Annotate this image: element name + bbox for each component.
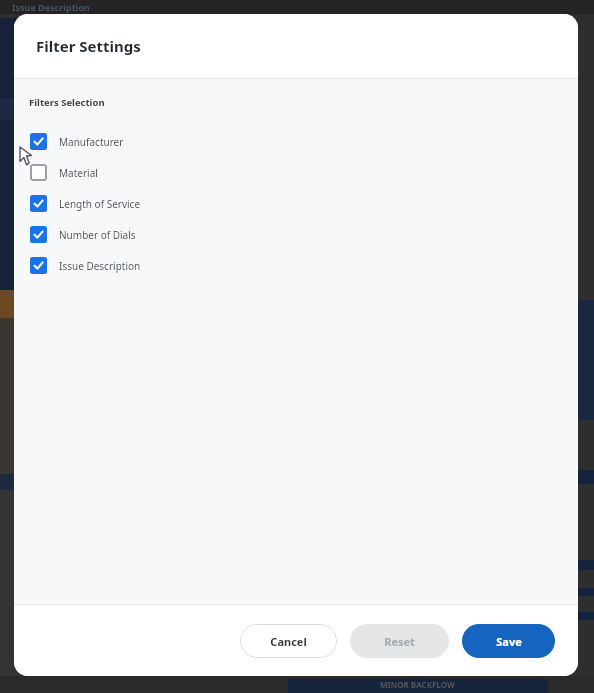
staticText: Length of Service bbox=[59, 197, 141, 211]
button[interactable]: Cancel bbox=[240, 624, 337, 658]
staticText: Save bbox=[496, 634, 522, 649]
button[interactable]: Reset bbox=[350, 624, 449, 658]
button[interactable]: Manufacturer bbox=[14, 126, 578, 157]
staticText: Filter Settings bbox=[36, 36, 141, 56]
staticText: MINOR BACKFLOW bbox=[380, 679, 455, 690]
staticText: Issue Description bbox=[12, 1, 90, 13]
staticText: Manufacturer bbox=[59, 135, 124, 149]
staticText: Reset bbox=[384, 634, 415, 649]
button[interactable]: Issue Description bbox=[14, 250, 578, 281]
button[interactable]: Number of Dials bbox=[14, 219, 578, 250]
button[interactable]: Material bbox=[14, 157, 578, 188]
staticText: Filters Selection bbox=[29, 96, 105, 109]
button[interactable]: Save bbox=[462, 624, 555, 658]
staticText: Number of Dials bbox=[59, 228, 136, 242]
staticText: Material bbox=[59, 166, 98, 180]
staticText: Issue Description bbox=[59, 259, 141, 273]
staticText: Cancel bbox=[270, 634, 307, 649]
button[interactable]: Length of Service bbox=[14, 188, 578, 219]
